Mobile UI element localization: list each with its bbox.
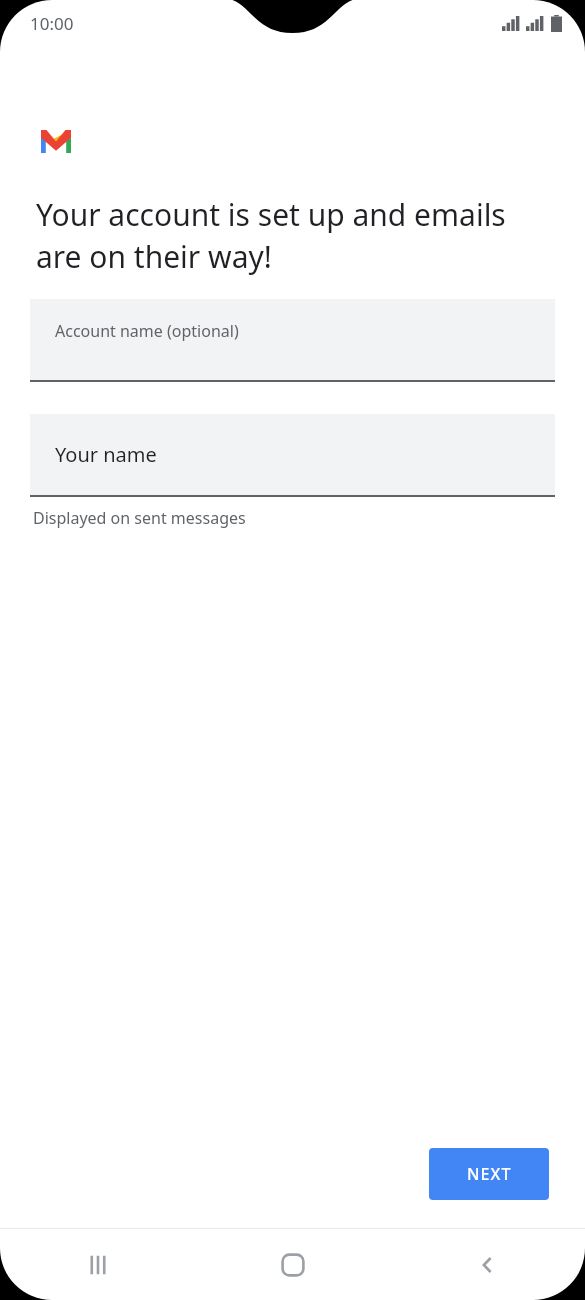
staticText: Your account is set up and emails are on… [36,194,537,277]
staticText: Displayed on sent messages [33,507,246,529]
staticText: 10:00 [30,12,74,35]
button[interactable]: Home [195,1229,390,1300]
button[interactable]: Your name [30,414,555,495]
staticText: Account name (optional) [55,320,239,342]
button[interactable]: NEXT [429,1148,549,1200]
staticText: Your name [55,441,157,468]
button[interactable]: Account name (optional) [30,299,555,382]
button[interactable]: Back [390,1229,585,1300]
button[interactable]: Recent apps [0,1229,195,1300]
staticText: NEXT [467,1163,512,1185]
